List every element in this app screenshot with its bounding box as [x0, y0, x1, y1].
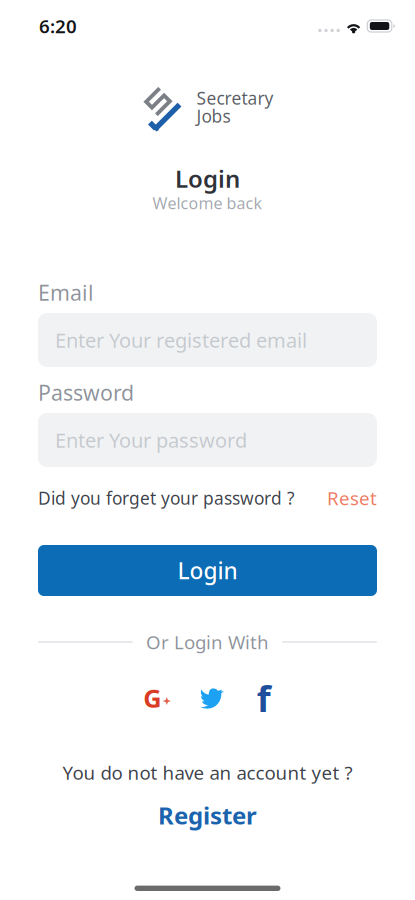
button[interactable]: Sign in with Google — [143, 685, 171, 711]
staticText: f — [257, 674, 271, 722]
staticText: Password — [38, 378, 134, 407]
staticText: Email — [38, 278, 94, 307]
button[interactable]: Sign in with Twitter — [200, 687, 224, 709]
staticText: Login — [175, 163, 240, 194]
staticText: Login — [177, 555, 237, 585]
staticText: G — [143, 681, 161, 715]
staticText: Or Login With — [146, 630, 269, 654]
staticText: Register — [158, 799, 257, 831]
button[interactable]: Sign in with Facebook — [256, 685, 272, 711]
staticText: Did you forget your password ? — [38, 486, 295, 509]
button[interactable]: Login — [38, 545, 377, 596]
staticText: Enter Your registered email — [55, 327, 307, 353]
staticText: Welcome back — [152, 192, 262, 214]
staticText: Jobs — [196, 104, 230, 127]
button[interactable]: Reset — [327, 486, 377, 510]
staticText: You do not have an account yet ? — [62, 760, 352, 785]
staticText: Reset — [327, 486, 377, 510]
staticText: 6:20 — [39, 14, 77, 38]
staticText: Secretary — [196, 86, 273, 109]
button[interactable]: Register — [158, 804, 257, 827]
staticText: Enter Your password — [55, 427, 247, 453]
